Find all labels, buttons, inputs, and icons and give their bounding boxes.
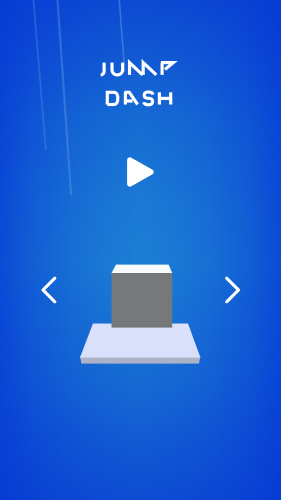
button[interactable]: Play: [127, 157, 155, 187]
button[interactable]: Previous: [40, 276, 57, 304]
button[interactable]: Next: [224, 276, 241, 304]
